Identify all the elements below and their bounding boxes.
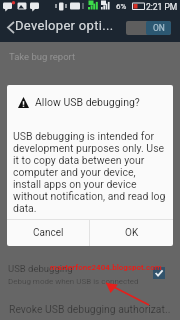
staticText: Allow USB debugging? bbox=[35, 96, 140, 108]
button[interactable]: Cancel bbox=[7, 220, 89, 246]
staticText: Developer opti... bbox=[15, 18, 114, 33]
staticText: ON bbox=[153, 23, 165, 33]
staticText: Revoke USB debugging authorizat.. bbox=[9, 303, 171, 315]
staticText: Debug mode when USB is connected bbox=[8, 277, 139, 286]
staticText: USB debugging bbox=[8, 263, 73, 274]
staticText: masterfone2404.blogspot.com bbox=[50, 263, 162, 272]
staticText: Take bug report bbox=[9, 51, 76, 62]
staticText: 6% bbox=[116, 2, 127, 11]
button[interactable]: OK bbox=[90, 220, 173, 246]
staticText: Cancel bbox=[33, 227, 64, 239]
button[interactable]: Developer options toggle bbox=[126, 21, 171, 35]
staticText: USB debugging is intended for developmen… bbox=[13, 130, 166, 214]
button[interactable]: Back bbox=[3, 13, 17, 42]
button[interactable]: USB debugging checkbox bbox=[153, 267, 165, 279]
staticText: OK bbox=[125, 227, 139, 239]
staticText: 2:21 PM bbox=[146, 2, 178, 12]
